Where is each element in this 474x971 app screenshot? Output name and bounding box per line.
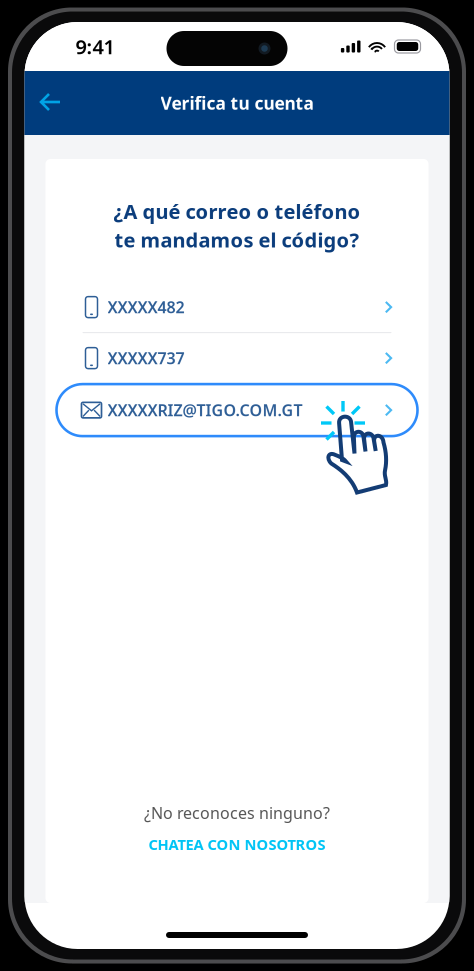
- button[interactable]: XXXXX737: [56, 333, 417, 383]
- button[interactable]: XXXXXRIZ@TIGO.COM.GT: [56, 384, 417, 436]
- staticText: CHATEA CON NOSOTROS: [148, 834, 325, 854]
- staticText: te mandamos el código?: [114, 227, 359, 253]
- button[interactable]: CHATEA CON NOSOTROS: [134, 827, 339, 861]
- staticText: XXXXX737: [107, 347, 184, 369]
- staticText: ¿A qué correo o teléfono: [113, 198, 360, 225]
- button[interactable]: XXXXX482: [56, 282, 417, 332]
- staticText: ¿No reconoces ninguno?: [144, 802, 330, 823]
- staticText: XXXXXRIZ@TIGO.COM.GT: [107, 399, 302, 421]
- button[interactable]: Back: [30, 82, 70, 122]
- staticText: Verifica tu cuenta: [160, 91, 313, 114]
- staticText: XXXXX482: [107, 296, 184, 318]
- staticText: 9:41: [75, 33, 114, 60]
